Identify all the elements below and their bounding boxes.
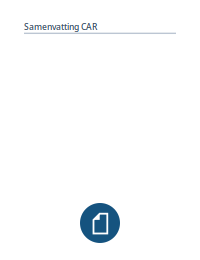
staticText: Samenvatting CAR [24, 21, 97, 33]
button[interactable]: Samenvatting document openen [80, 203, 120, 243]
